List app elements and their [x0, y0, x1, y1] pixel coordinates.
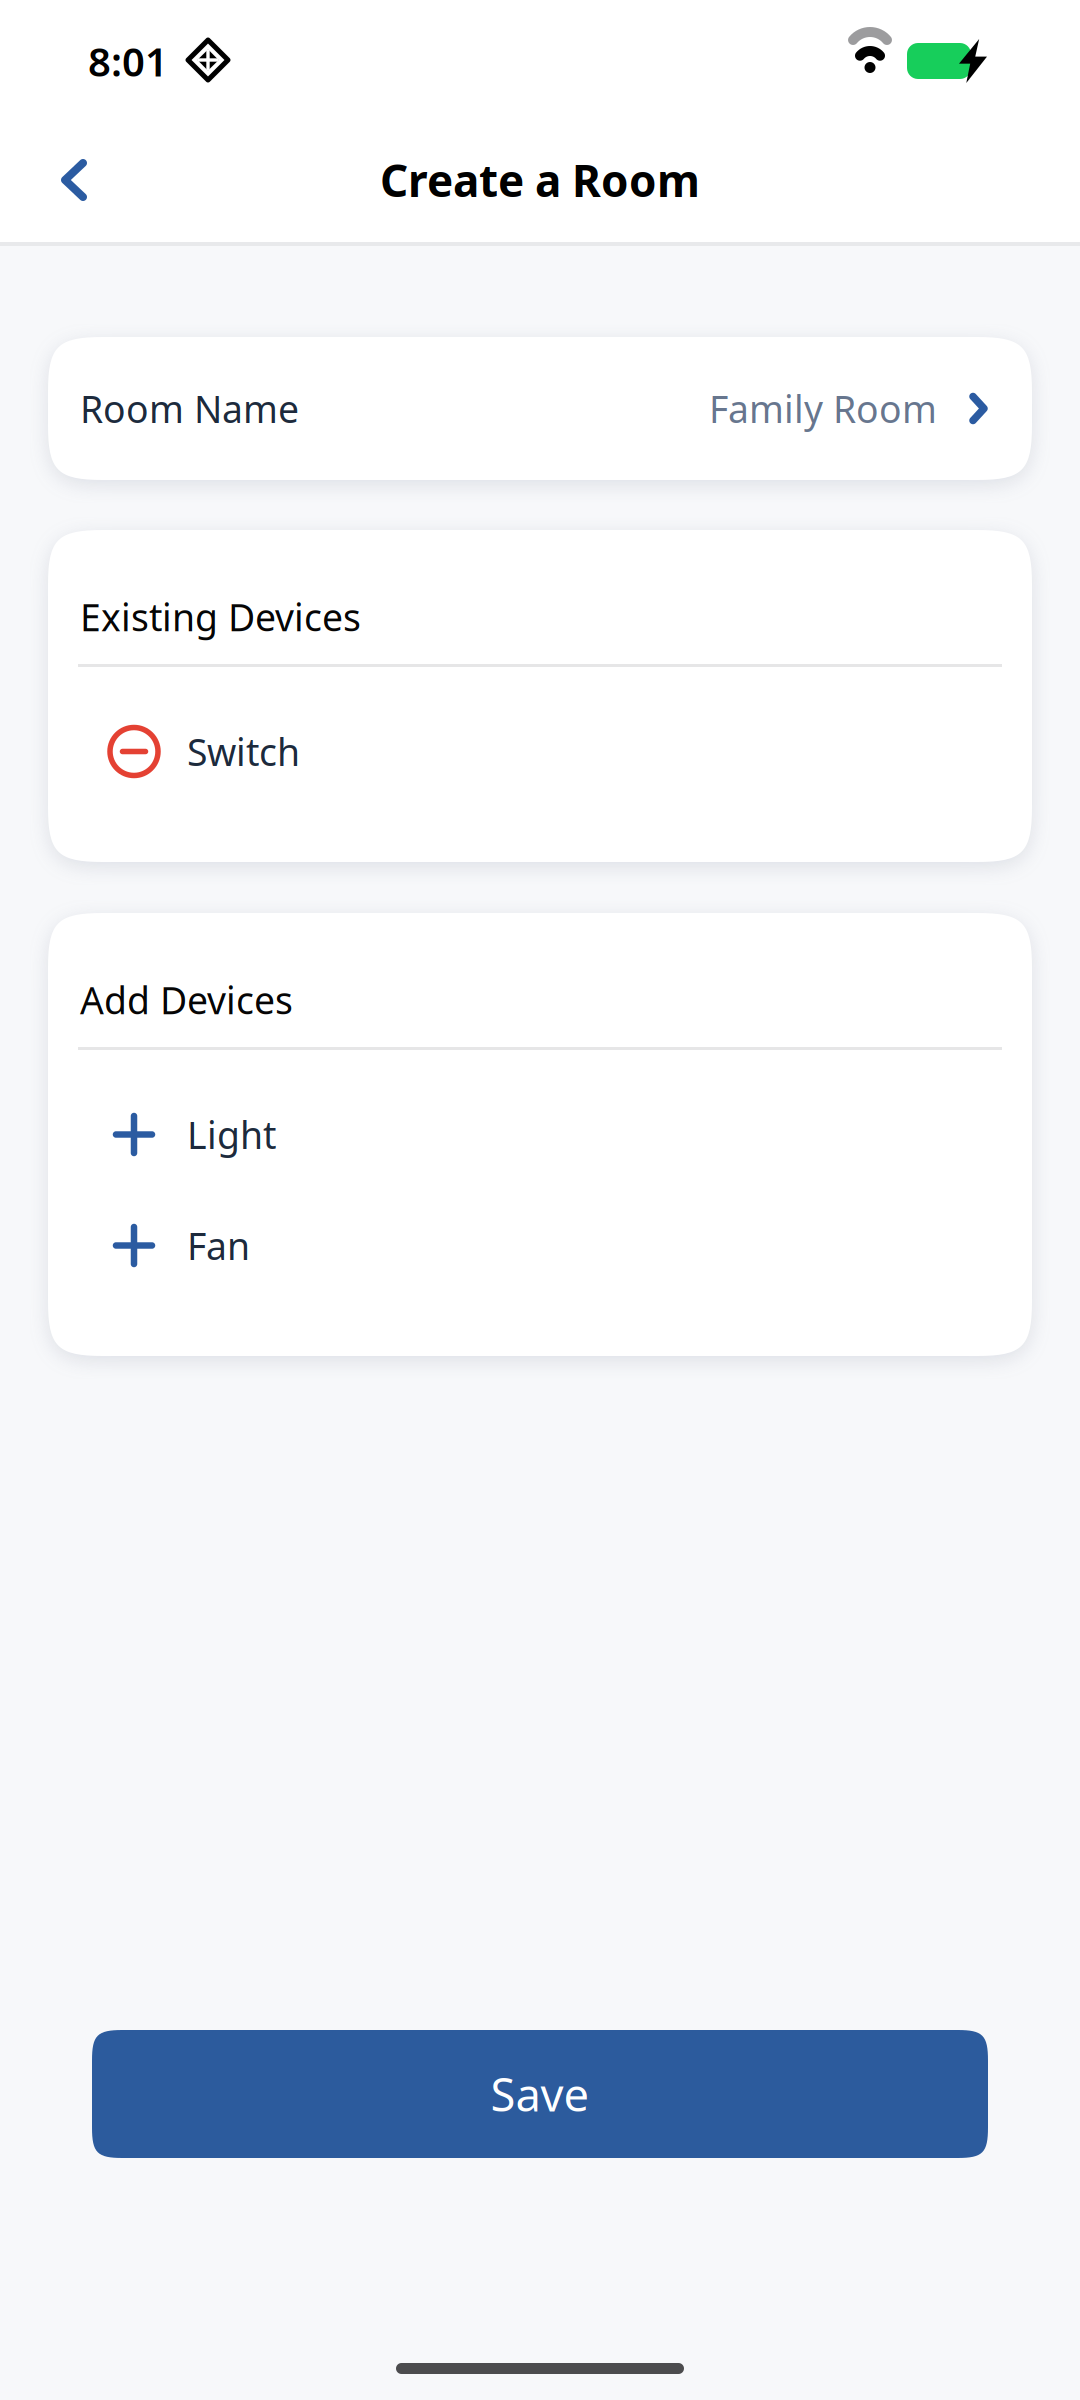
button[interactable]: Save [92, 2030, 988, 2158]
button[interactable]: Room Name [48, 337, 1032, 480]
staticText: Create a Room [380, 151, 700, 209]
staticText: 8:01 [88, 34, 168, 87]
button[interactable]: Switch [48, 696, 1032, 807]
staticText: Switch [187, 727, 300, 776]
staticText: Fan [187, 1221, 250, 1270]
staticText: Existing Devices [80, 592, 361, 642]
button[interactable]: Fan [48, 1190, 1032, 1301]
button[interactable]: Back [26, 128, 122, 232]
staticText: Room Name [80, 384, 299, 433]
staticText: Add Devices [80, 975, 293, 1025]
staticText: Save [490, 2064, 589, 2124]
button[interactable]: Light [48, 1079, 1032, 1190]
staticText: Family Room [709, 384, 937, 433]
staticText: Light [187, 1110, 276, 1159]
